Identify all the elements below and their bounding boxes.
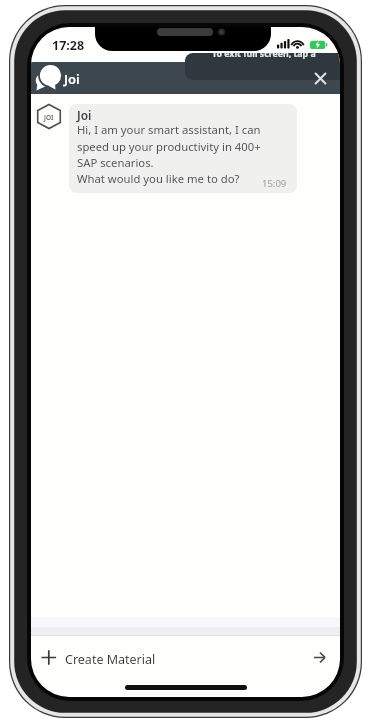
staticText: Joi [64,70,80,88]
staticText: JOI [44,113,54,122]
staticText: Create Material [65,651,156,668]
staticText: To exit full screen, tap a [212,53,316,60]
staticText: Joi [77,107,92,123]
staticText: 15:09 [262,177,287,190]
button[interactable] [309,67,332,90]
staticText: Hi, I am your smart assistant, I can spe… [77,122,261,186]
button[interactable]: Create Material [31,636,340,674]
staticText: 17:28 [52,37,85,54]
